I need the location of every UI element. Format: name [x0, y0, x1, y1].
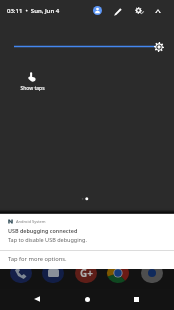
button[interactable]: Google Plus: [75, 263, 97, 283]
button[interactable]: Collapse: [151, 4, 165, 18]
button[interactable]: Brightness: [151, 39, 166, 54]
button[interactable]: Chrome: [107, 263, 129, 283]
button[interactable]: Show taps: [12, 72, 52, 92]
button[interactable]: Messages: [42, 263, 64, 283]
button[interactable]: USB debugging connected: [0, 227, 174, 243]
button[interactable]: Tap for more options.: [0, 251, 174, 269]
staticText: G+: [80, 266, 93, 280]
staticText: Show taps: [20, 85, 45, 92]
staticText: Tap to disable USB debugging.: [8, 236, 87, 243]
button[interactable]: Home: [77, 289, 97, 309]
button[interactable]: Settings: [131, 3, 146, 18]
button[interactable]: Account: [90, 3, 105, 18]
staticText: Tap for more options.: [8, 255, 67, 263]
button[interactable]: Back: [27, 289, 47, 309]
button[interactable]: Phone: [10, 263, 32, 283]
staticText: 03:11 • Sun, Jun 4: [7, 7, 60, 15]
staticText: USB debugging connected: [8, 227, 78, 234]
button[interactable]: Camera: [141, 263, 163, 283]
button[interactable]: Edit: [110, 4, 125, 19]
button[interactable]: Recents: [126, 289, 146, 309]
staticText: Android System: [16, 219, 46, 224]
